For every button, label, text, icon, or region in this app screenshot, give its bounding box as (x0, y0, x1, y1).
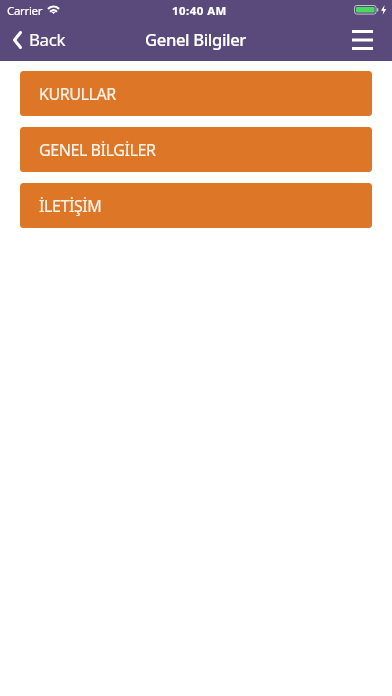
button[interactable]: İLETİŞİM (20, 183, 372, 228)
staticText: Carrier (7, 3, 43, 19)
staticText: İLETİŞİM (39, 195, 102, 217)
staticText: KURULLAR (39, 83, 116, 105)
button[interactable]: KURULLAR (20, 71, 372, 116)
staticText: Back (29, 28, 66, 51)
staticText: 10:40 AM (172, 3, 227, 19)
button[interactable]: Menu (345, 23, 380, 57)
staticText: GENEL BİLGİLER (39, 139, 156, 161)
button[interactable]: GENEL BİLGİLER (20, 127, 372, 172)
staticText: Genel Bilgiler (145, 28, 247, 51)
button[interactable]: Back (0, 19, 72, 60)
